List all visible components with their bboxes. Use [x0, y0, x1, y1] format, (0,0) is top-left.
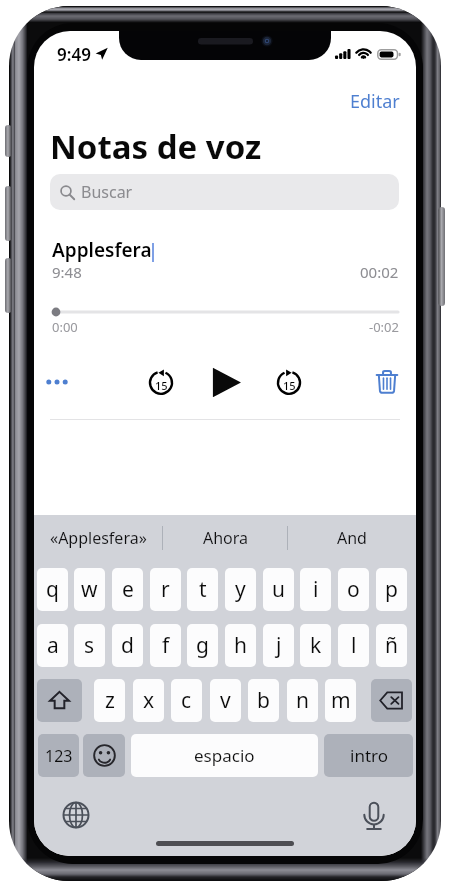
button[interactable]: intro: [324, 734, 413, 777]
staticText: m: [331, 686, 351, 715]
button[interactable]: Back 15 seconds: [143, 364, 179, 400]
button[interactable]: q: [37, 568, 68, 611]
button[interactable]: w: [74, 568, 105, 611]
staticText: h: [234, 631, 247, 660]
button[interactable]: Dictate: [358, 799, 390, 831]
staticText: v: [220, 686, 231, 715]
staticText: d: [121, 631, 134, 660]
staticText: 15: [155, 378, 168, 393]
staticText: g: [196, 631, 209, 660]
button[interactable]: e: [112, 568, 143, 611]
staticText: j: [276, 631, 282, 660]
button[interactable]: x: [133, 679, 164, 722]
staticText: intro: [350, 744, 388, 767]
button[interactable]: y: [225, 568, 256, 611]
staticText: x: [143, 686, 155, 715]
staticText: b: [257, 686, 270, 715]
button[interactable]: Ahora: [163, 515, 288, 561]
button[interactable]: j: [263, 624, 294, 667]
staticText: 00:02: [360, 262, 399, 282]
button[interactable]: v: [210, 679, 241, 722]
staticText: z: [105, 686, 115, 715]
button[interactable]: h: [225, 624, 256, 667]
button[interactable]: «Applesfera»: [34, 515, 162, 561]
button[interactable]: n: [287, 679, 318, 722]
button[interactable]: z: [94, 679, 125, 722]
button[interactable]: u: [263, 568, 294, 611]
staticText: 0:00: [52, 318, 78, 336]
staticText: «Applesfera»: [50, 527, 147, 549]
staticText: k: [310, 631, 322, 660]
button[interactable]: Shift: [37, 679, 82, 722]
button[interactable]: 123: [38, 734, 79, 777]
button[interactable]: More options: [37, 362, 77, 402]
button[interactable]: Delete: [367, 362, 407, 402]
button[interactable]: g: [187, 624, 218, 667]
staticText: i: [313, 575, 319, 604]
button[interactable]: ñ: [376, 624, 407, 667]
button[interactable]: s: [74, 624, 105, 667]
button[interactable]: k: [300, 624, 331, 667]
staticText: a: [47, 631, 59, 660]
staticText: q: [46, 575, 59, 604]
button[interactable]: Backspace: [371, 679, 412, 722]
staticText: Applesfera: [52, 237, 152, 263]
button[interactable]: Editar: [345, 84, 405, 119]
button[interactable]: i: [300, 568, 331, 611]
button[interactable]: a: [37, 624, 68, 667]
staticText: ñ: [385, 631, 398, 660]
staticText: c: [181, 686, 192, 715]
button[interactable]: Buscar: [50, 174, 399, 210]
button[interactable]: Forward 15 seconds: [271, 364, 307, 400]
button[interactable]: o: [338, 568, 369, 611]
staticText: s: [84, 631, 95, 660]
staticText: p: [385, 575, 398, 604]
staticText: 9:49: [57, 43, 91, 66]
button[interactable]: Change keyboard language: [60, 799, 92, 831]
staticText: l: [351, 631, 357, 660]
staticText: Editar: [350, 89, 400, 114]
staticText: r: [161, 575, 170, 604]
button[interactable]: And: [288, 515, 416, 561]
button[interactable]: r: [150, 568, 181, 611]
staticText: n: [296, 686, 309, 715]
button[interactable]: t: [187, 568, 218, 611]
staticText: And: [337, 527, 367, 549]
staticText: u: [272, 575, 285, 604]
staticText: Notas de voz: [50, 124, 262, 169]
button[interactable]: c: [171, 679, 202, 722]
button[interactable]: b: [248, 679, 279, 722]
button[interactable]: m: [325, 679, 356, 722]
button[interactable]: p: [376, 568, 407, 611]
staticText: 123: [45, 745, 73, 767]
staticText: espacio: [194, 744, 255, 767]
staticText: o: [347, 575, 360, 604]
button[interactable]: Emoji: [83, 734, 125, 777]
button[interactable]: Play: [205, 362, 245, 402]
staticText: 15: [283, 378, 296, 393]
staticText: Ahora: [203, 527, 249, 549]
staticText: 9:48: [52, 262, 82, 282]
staticText: e: [122, 575, 134, 604]
staticText: y: [235, 575, 246, 604]
staticText: f: [162, 631, 170, 660]
button[interactable]: espacio: [131, 734, 318, 777]
button[interactable]: f: [150, 624, 181, 667]
staticText: -0:02: [369, 318, 399, 336]
staticText: w: [81, 575, 98, 604]
button[interactable]: d: [112, 624, 143, 667]
button[interactable]: l: [338, 624, 369, 667]
staticText: Buscar: [81, 181, 133, 203]
staticText: t: [199, 575, 207, 604]
